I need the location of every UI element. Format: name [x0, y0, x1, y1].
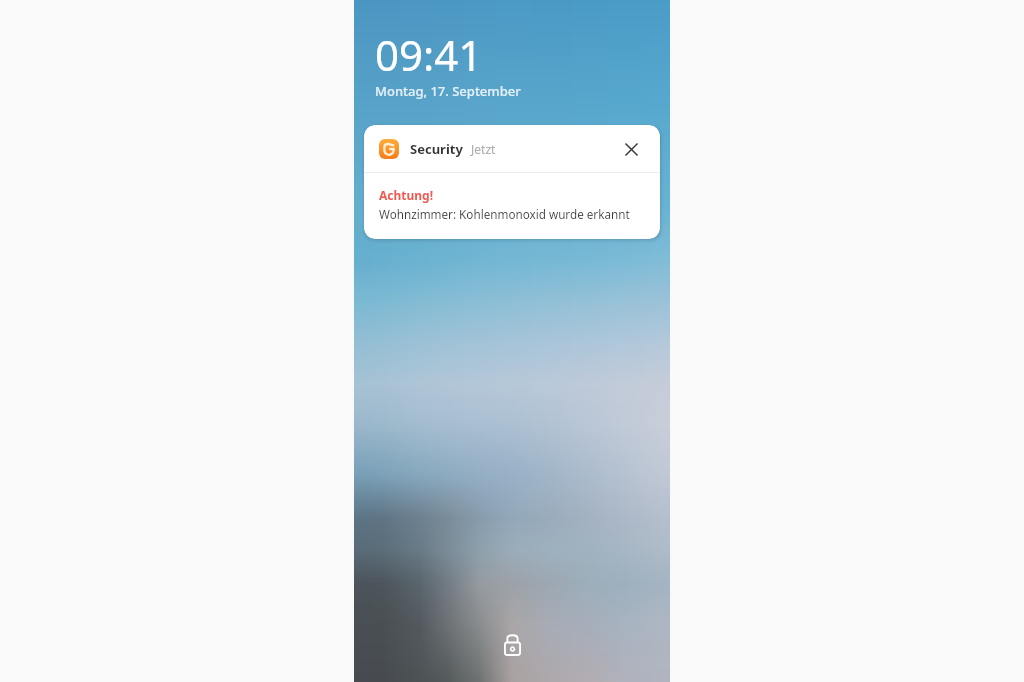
staticText: Montag, 17. September	[375, 82, 521, 100]
button[interactable]: Entsperren	[495, 628, 529, 662]
button[interactable]: Security	[364, 125, 660, 239]
staticText: Wohnzimmer: Kohlenmonoxid wurde erkannt	[379, 206, 630, 222]
staticText: Jetzt	[471, 141, 496, 157]
button[interactable]: Benachrichtigung schließen	[620, 138, 642, 160]
staticText: 09:41	[375, 26, 483, 83]
staticText: Achtung!	[379, 187, 434, 203]
staticText: Security	[410, 140, 463, 158]
